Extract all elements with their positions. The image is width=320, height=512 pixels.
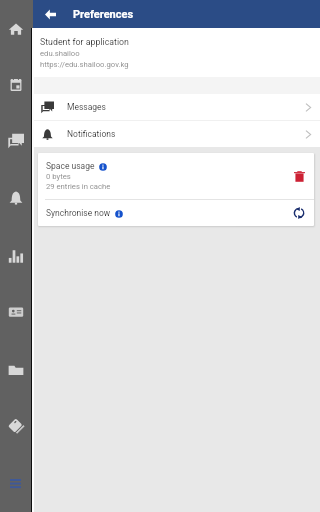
button[interactable]: Tags: [8, 418, 24, 434]
button[interactable]: Synchronise now: [38, 200, 314, 226]
button[interactable]: Home: [8, 21, 24, 37]
staticText: Notifications: [67, 129, 116, 139]
button[interactable]: Messages: [8, 133, 24, 149]
staticText: Messages: [67, 102, 106, 112]
staticText: edu.shailoo: [40, 49, 80, 58]
button[interactable]: Notifications: [8, 190, 24, 206]
button[interactable]: Calendar: [8, 77, 24, 93]
button[interactable]: Menu: [10, 477, 21, 488]
staticText: Preferences: [73, 8, 134, 21]
staticText: https://edu.shailoo.gov.kg: [40, 60, 129, 69]
button[interactable]: Clear cache: [288, 165, 310, 187]
staticText: Synchronise now: [46, 208, 111, 218]
staticText: 0 bytes: [46, 172, 71, 181]
staticText: 29 entries in cache: [46, 182, 111, 191]
button[interactable]: Notifications: [33, 121, 320, 147]
staticText: Student for application: [40, 37, 129, 47]
button[interactable]: Synchronise: [288, 202, 310, 224]
staticText: Space usage: [46, 161, 95, 171]
button[interactable]: Back: [36, 0, 64, 28]
button[interactable]: Messages: [33, 94, 320, 120]
button[interactable]: Statistics: [8, 248, 24, 264]
button[interactable]: Files: [8, 362, 24, 378]
button[interactable]: Space usage: [38, 153, 314, 199]
button[interactable]: Contacts: [8, 304, 24, 320]
